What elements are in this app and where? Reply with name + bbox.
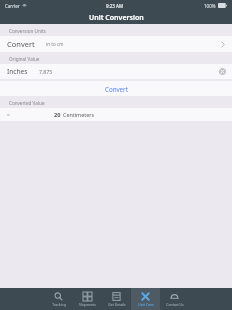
staticText: in to cm: [46, 41, 64, 47]
staticText: Centimeters: [63, 111, 94, 118]
staticText: Original Value: [9, 56, 40, 62]
button[interactable]: Inches: [0, 64, 232, 79]
staticText: Carrier: [5, 3, 20, 9]
staticText: Get Details: [108, 302, 126, 307]
staticText: Contact Us: [166, 302, 184, 307]
button[interactable]: Clear value: [219, 68, 226, 75]
staticText: 100%: [204, 3, 216, 9]
staticText: Conversion Units: [9, 28, 46, 34]
button[interactable]: Convert: [0, 36, 232, 52]
staticText: Unit Conv: [138, 302, 154, 307]
staticText: Convert: [7, 39, 35, 49]
button[interactable]: =: [0, 108, 232, 121]
button[interactable]: Get Details: [102, 288, 131, 310]
button[interactable]: Convert: [0, 81, 232, 96]
staticText: Shipments: [79, 302, 96, 307]
staticText: 9:23 AM: [106, 3, 124, 9]
button[interactable]: Shipments: [73, 288, 102, 310]
staticText: Converted Value: [9, 100, 45, 106]
staticText: 7.875: [39, 68, 53, 75]
other: Choose units: [221, 41, 225, 48]
button[interactable]: Unit Conv: [131, 288, 160, 310]
staticText: =: [7, 112, 10, 118]
staticText: Unit Conversion: [89, 13, 144, 23]
staticText: Inches: [7, 67, 28, 76]
button[interactable]: Contact Us: [160, 288, 189, 310]
staticText: 20: [54, 111, 61, 119]
staticText: Tracking: [52, 302, 66, 307]
staticText: Convert: [105, 85, 128, 93]
button[interactable]: Tracking: [44, 288, 73, 310]
